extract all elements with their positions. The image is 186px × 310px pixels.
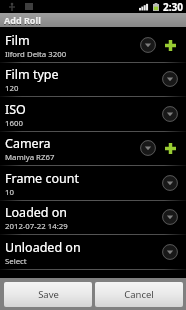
staticText: 1600 (5, 118, 23, 129)
button[interactable]: Open list (137, 137, 159, 159)
button[interactable]: Cancel (95, 282, 183, 307)
button[interactable]: Open list (159, 172, 181, 194)
button[interactable]: Open list (159, 206, 181, 228)
staticText: Frame count (5, 170, 79, 187)
staticText: Select (5, 256, 27, 267)
button[interactable]: Add (159, 137, 181, 159)
staticText: Mamiya RZ67 (5, 152, 55, 163)
staticText: 10 (5, 187, 14, 198)
staticText: Ilford Delta 3200 (5, 49, 67, 60)
staticText: Add Roll (4, 14, 41, 26)
staticText: ISO (5, 101, 26, 118)
staticText: Cancel (124, 288, 154, 301)
staticText: Film (5, 32, 30, 49)
staticText: Camera (5, 135, 51, 152)
button[interactable]: Frame count (0, 166, 186, 201)
staticText: Film type (5, 66, 59, 83)
button[interactable]: Add (159, 34, 181, 56)
staticText: 2012-07-22 14:29 (5, 221, 68, 232)
staticText: Loaded on (5, 204, 68, 221)
button[interactable]: Film (0, 28, 186, 63)
button[interactable]: Film type (0, 62, 186, 97)
button[interactable]: Camera (0, 131, 186, 166)
staticText: Save (38, 288, 59, 301)
button[interactable]: ISO (0, 97, 186, 132)
staticText: Unloaded on (5, 239, 81, 256)
button[interactable]: Open list (159, 103, 181, 125)
staticText: Add Roll (4, 15, 41, 27)
button[interactable]: Save (4, 282, 92, 307)
button[interactable]: Open list (159, 68, 181, 90)
staticText: 2:30 (163, 0, 183, 13)
button[interactable]: Unloaded on (0, 235, 186, 270)
button[interactable]: Open list (159, 241, 181, 263)
button[interactable]: Open list (137, 34, 159, 56)
staticText: 120 (5, 83, 19, 94)
button[interactable]: Loaded on (0, 200, 186, 235)
